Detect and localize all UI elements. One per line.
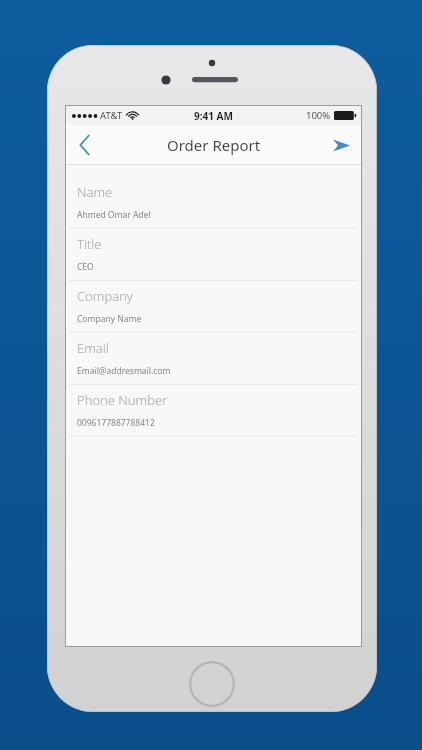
staticText: Company (77, 287, 133, 305)
staticText: Phone Number (77, 391, 168, 409)
button[interactable]: Phone Number (66, 385, 361, 437)
staticText: Name (77, 183, 113, 201)
staticText: Ahmed Omar Adel (77, 209, 151, 221)
staticText: 0096177887788412 (77, 417, 155, 429)
button[interactable]: Home (189, 661, 235, 707)
staticText: 100% (306, 109, 331, 122)
button[interactable]: Name (66, 177, 361, 229)
staticText: AT&T (100, 109, 123, 122)
staticText: Title (77, 235, 102, 253)
button[interactable]: Company (66, 281, 361, 333)
staticText: Email (77, 339, 109, 357)
staticText: 9:41 AM (194, 109, 233, 123)
staticText: Email@addresmail.com (77, 365, 171, 377)
button[interactable]: Email (66, 333, 361, 385)
button[interactable]: Send (321, 125, 361, 165)
staticText: Company Name (77, 313, 142, 325)
staticText: Order Report (167, 135, 261, 155)
button[interactable]: Back (66, 125, 104, 165)
staticText: CEO (77, 261, 94, 273)
button[interactable]: Title (66, 229, 361, 281)
